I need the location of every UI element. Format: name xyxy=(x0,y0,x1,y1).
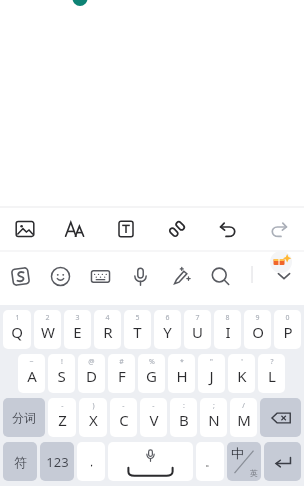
staticText: M xyxy=(237,410,251,430)
staticText: I xyxy=(225,322,231,342)
button[interactable]: 1 xyxy=(3,310,31,349)
staticText: 符 xyxy=(14,454,27,470)
staticText: - xyxy=(61,401,64,411)
staticText: ' xyxy=(241,357,243,367)
button[interactable]: 分词 xyxy=(3,398,45,437)
button[interactable]: ; xyxy=(200,398,227,437)
staticText: Z xyxy=(58,410,67,430)
staticText: O xyxy=(252,322,264,342)
staticText: Y xyxy=(163,322,172,342)
button[interactable]: 5 xyxy=(124,310,151,349)
staticText: T xyxy=(133,322,142,342)
staticText: N xyxy=(208,410,220,430)
button[interactable]: ， xyxy=(77,442,105,481)
staticText: ? xyxy=(270,357,274,367)
button[interactable]: Emoji xyxy=(40,266,80,305)
staticText: K xyxy=(237,366,247,386)
staticText: F xyxy=(118,366,126,386)
button[interactable]: 。 xyxy=(196,442,224,481)
button[interactable]: Insert link xyxy=(151,207,202,251)
button[interactable]: # xyxy=(108,354,135,393)
staticText: 5 xyxy=(135,313,140,323)
staticText: 8 xyxy=(225,313,230,323)
button[interactable]: 0 xyxy=(274,310,301,349)
staticText: - xyxy=(122,401,125,411)
staticText: ) xyxy=(92,401,95,411)
button[interactable]: 9 xyxy=(244,310,271,349)
staticText: 0 xyxy=(285,313,290,323)
staticText: V xyxy=(149,410,159,430)
staticText: 1 xyxy=(15,313,20,323)
button[interactable]: Text box xyxy=(100,207,151,251)
staticText: E xyxy=(73,322,82,342)
staticText: ~ xyxy=(29,357,34,367)
staticText: 。 xyxy=(205,455,216,469)
button[interactable]: ~ xyxy=(18,354,45,393)
button[interactable]: Handwriting xyxy=(160,266,200,305)
staticText: X xyxy=(89,410,98,430)
button[interactable]: - xyxy=(140,398,167,437)
button[interactable]: 符 xyxy=(3,442,37,481)
staticText: " xyxy=(210,357,213,367)
button[interactable]: 2 xyxy=(34,310,61,349)
button[interactable]: ' xyxy=(228,354,255,393)
button[interactable]: - xyxy=(110,398,137,437)
button[interactable]: Space xyxy=(108,442,193,481)
button[interactable]: @ xyxy=(78,354,105,393)
staticText: * xyxy=(180,357,184,367)
button[interactable]: 3 xyxy=(64,310,91,349)
button[interactable]: Undo xyxy=(202,207,253,251)
staticText: G xyxy=(146,366,157,386)
staticText: 6 xyxy=(165,313,170,323)
staticText: 123 xyxy=(46,453,69,471)
staticText: ; xyxy=(213,401,215,411)
staticText: U xyxy=(192,322,203,342)
staticText: 英 xyxy=(250,468,258,478)
staticText: ， xyxy=(86,455,97,469)
button[interactable]: Enter xyxy=(264,442,301,481)
button[interactable]: Chinese English toggle xyxy=(227,442,261,481)
staticText: A xyxy=(27,366,37,386)
button[interactable]: / xyxy=(230,398,257,437)
button[interactable]: " xyxy=(198,354,225,393)
button[interactable]: Redo xyxy=(253,207,304,251)
staticText: 2 xyxy=(45,313,50,323)
staticText: % xyxy=(149,357,155,367)
button[interactable]: 8 xyxy=(214,310,241,349)
staticText: / xyxy=(242,401,245,411)
button[interactable]: % xyxy=(138,354,165,393)
staticText: : xyxy=(183,401,185,411)
staticText: Q xyxy=(11,322,23,342)
staticText: H xyxy=(176,366,188,386)
button[interactable]: : xyxy=(170,398,197,437)
staticText: 7 xyxy=(195,313,200,323)
button[interactable]: ? xyxy=(258,354,285,393)
button[interactable]: 7 xyxy=(184,310,211,349)
staticText: 中 xyxy=(231,445,244,461)
button[interactable]: ) xyxy=(79,398,107,437)
button[interactable]: 4 xyxy=(94,310,121,349)
staticText: ! xyxy=(61,357,63,367)
button[interactable]: Voice input xyxy=(120,266,160,305)
button[interactable]: Promotion xyxy=(270,251,292,273)
staticText: D xyxy=(86,366,97,386)
button[interactable]: Keyboard layout xyxy=(80,266,120,305)
staticText: 9 xyxy=(255,313,260,323)
button[interactable]: Text style xyxy=(50,207,100,251)
button[interactable]: * xyxy=(168,354,195,393)
staticText: 4 xyxy=(105,313,110,323)
button[interactable]: 6 xyxy=(154,310,181,349)
button[interactable]: Search xyxy=(200,266,240,305)
staticText: # xyxy=(119,357,124,367)
staticText: - xyxy=(152,401,155,411)
button[interactable]: ! xyxy=(48,354,75,393)
button[interactable]: 123 xyxy=(40,442,74,481)
staticText: C xyxy=(119,410,129,430)
button[interactable]: - xyxy=(48,398,76,437)
staticText: 分词 xyxy=(12,410,36,425)
button[interactable]: Hide keyboard xyxy=(264,266,304,305)
button[interactable]: Backspace xyxy=(260,398,301,437)
button[interactable]: Insert image xyxy=(0,207,50,251)
staticText: @ xyxy=(88,357,95,367)
button[interactable]: Sogou input xyxy=(0,266,40,305)
